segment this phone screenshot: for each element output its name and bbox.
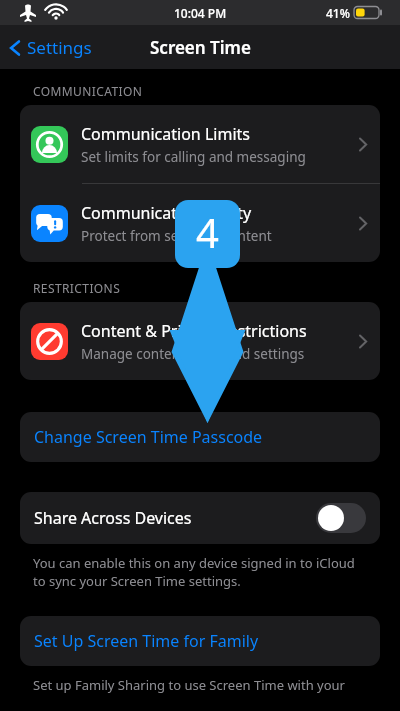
staticText: 4 <box>175 205 240 259</box>
staticText: Communication Safety <box>81 202 252 224</box>
staticText: Set limits for calling and messaging <box>81 148 306 166</box>
staticText: Protect from sensitive content <box>81 227 272 245</box>
staticText: RESTRICTIONS <box>33 280 121 296</box>
staticText: Manage content, apps and settings <box>81 345 305 363</box>
staticText: 41% <box>326 5 350 21</box>
button[interactable]: Content & Privacy Restrictions <box>20 302 380 380</box>
staticText: You can enable this on any device signed… <box>33 554 355 590</box>
button[interactable]: Communication Limits <box>20 105 380 183</box>
staticText: Settings <box>27 36 92 59</box>
button[interactable]: Change Screen Time Passcode <box>20 412 380 462</box>
staticText: Screen Time <box>150 36 251 59</box>
button[interactable]: Share Across Devices toggle, off <box>316 503 366 533</box>
staticText: COMMUNICATION <box>33 83 143 99</box>
button[interactable]: Back to Settings <box>0 30 102 65</box>
staticText: 10:04 PM <box>174 5 227 21</box>
staticText: Change Screen Time Passcode <box>34 426 263 448</box>
staticText: Content & Privacy Restrictions <box>81 320 307 342</box>
button[interactable]: Share Across Devices <box>20 492 380 544</box>
button[interactable]: Communication Safety <box>20 184 380 262</box>
staticText: Set Up Screen Time for Family <box>34 630 259 652</box>
button[interactable]: Set Up Screen Time for Family <box>20 616 380 666</box>
staticText: Communication Limits <box>81 123 250 145</box>
staticText: Set up Family Sharing to use Screen Time… <box>33 676 345 694</box>
staticText: Share Across Devices <box>34 507 316 529</box>
